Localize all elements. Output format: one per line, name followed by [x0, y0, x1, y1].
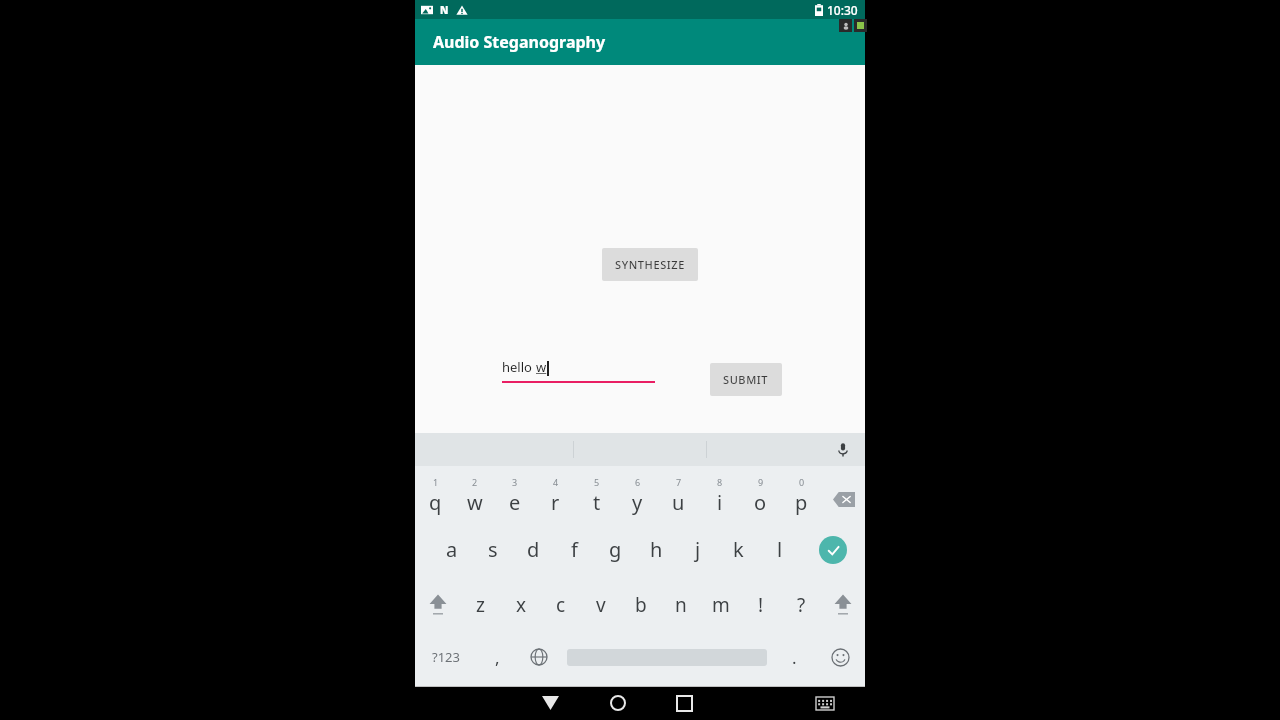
button[interactable]: c [541, 577, 581, 632]
staticText: l [777, 536, 783, 563]
button[interactable]: 3 [495, 469, 535, 522]
staticText: c [556, 592, 566, 618]
staticText: SUBMIT [723, 372, 769, 387]
button[interactable]: n [661, 577, 701, 632]
staticText: w [467, 489, 483, 516]
staticText: SYNTHESIZE [615, 257, 685, 272]
button[interactable]: Home [584, 695, 651, 711]
staticText: ! [758, 592, 764, 618]
button[interactable]: a [431, 522, 472, 577]
staticText: k [733, 536, 744, 563]
button[interactable]: j [677, 522, 718, 577]
staticText: x [516, 592, 527, 618]
staticText: u [672, 489, 685, 516]
button[interactable]: 2 [455, 469, 495, 522]
staticText: f [571, 536, 578, 563]
staticText: 8 [717, 476, 723, 488]
staticText: ? [797, 592, 806, 618]
button[interactable]: v [581, 577, 621, 632]
button[interactable]: Voice input [835, 442, 851, 458]
staticText: 5 [594, 476, 600, 488]
button[interactable]: s [472, 522, 513, 577]
staticText: hello [502, 358, 536, 376]
button[interactable]: Emoji [815, 632, 865, 682]
staticText: y [632, 489, 643, 516]
staticText: e [509, 489, 521, 516]
button[interactable]: 9 [740, 469, 781, 522]
button[interactable]: f [554, 522, 595, 577]
button[interactable]: , [477, 632, 518, 682]
staticText: j [695, 536, 701, 563]
staticText: 1 [433, 476, 439, 488]
staticText: 7 [676, 476, 682, 488]
staticText: t [593, 489, 601, 516]
staticText: p [795, 489, 808, 516]
staticText: n [675, 592, 687, 618]
button[interactable]: b [621, 577, 661, 632]
staticText: o [754, 489, 767, 516]
staticText: i [717, 489, 723, 516]
button[interactable]: 5 [576, 469, 617, 522]
button[interactable]: h [636, 522, 677, 577]
staticText: ?123 [432, 648, 460, 666]
staticText: 0 [799, 476, 805, 488]
staticText: N [440, 3, 449, 17]
staticText: Audio Steganography [433, 31, 606, 53]
button[interactable]: l [759, 522, 800, 577]
button[interactable]: Shift [821, 577, 865, 632]
button[interactable]: 0 [781, 469, 822, 522]
button[interactable]: Back [517, 696, 584, 710]
staticText: 9 [758, 476, 764, 488]
button[interactable]: 1 [415, 469, 455, 522]
button[interactable]: Recents [651, 696, 718, 711]
button[interactable]: 6 [617, 469, 658, 522]
button[interactable]: Change language [518, 632, 559, 682]
staticText: b [635, 592, 647, 618]
button[interactable]: 7 [658, 469, 699, 522]
button[interactable]: d [513, 522, 554, 577]
staticText: v [596, 592, 606, 618]
staticText: . [792, 646, 797, 669]
button[interactable]: Backspace [822, 469, 865, 522]
staticText: d [527, 536, 540, 563]
staticText: m [712, 592, 730, 618]
button[interactable]: 4 [535, 469, 576, 522]
staticText: w [536, 358, 547, 376]
staticText: 4 [553, 476, 559, 488]
button[interactable]: SUBMIT [710, 363, 782, 396]
button[interactable]: x [501, 577, 541, 632]
button[interactable]: ?123 [415, 632, 477, 682]
button[interactable]: k [718, 522, 759, 577]
staticText: 3 [512, 476, 518, 488]
button[interactable]: z [460, 577, 501, 632]
button[interactable]: ! [741, 577, 781, 632]
staticText: h [650, 536, 663, 563]
staticText: 2 [472, 476, 478, 488]
staticText: r [551, 489, 560, 516]
staticText: a [446, 536, 458, 563]
button[interactable]: Keyboard [785, 697, 865, 710]
staticText: s [488, 536, 498, 563]
button[interactable]: . [774, 632, 815, 682]
button[interactable]: 8 [699, 469, 740, 522]
button[interactable]: SYNTHESIZE [602, 248, 698, 281]
staticText: 6 [635, 476, 641, 488]
button[interactable]: g [595, 522, 636, 577]
staticText: q [429, 489, 442, 516]
staticText: , [495, 646, 500, 669]
staticText: z [476, 592, 485, 618]
staticText: g [609, 536, 622, 563]
button[interactable]: ? [781, 577, 821, 632]
button[interactable]: Enter [800, 522, 865, 577]
button[interactable]: m [701, 577, 741, 632]
staticText: 10:30 [827, 2, 858, 18]
button[interactable]: Shift [415, 577, 460, 632]
